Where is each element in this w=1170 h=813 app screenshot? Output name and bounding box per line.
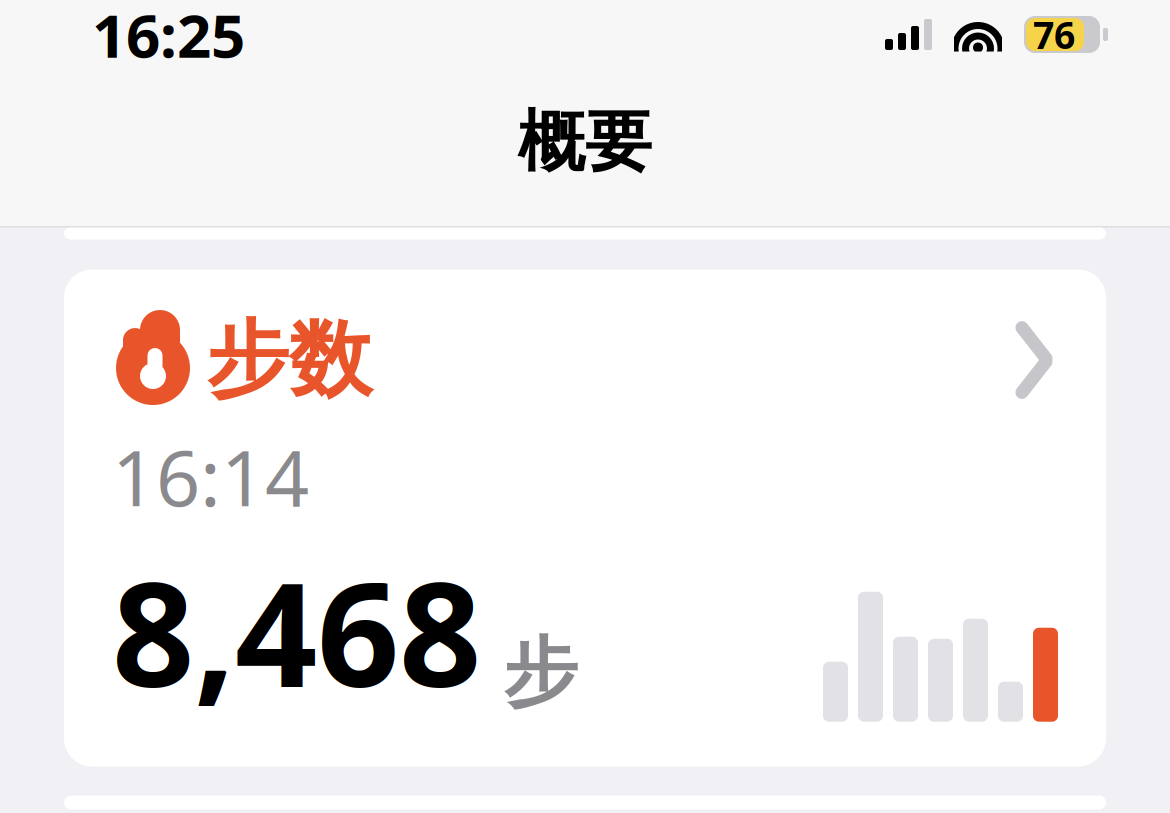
staticText: 概要 [518,101,652,183]
staticText: 76 [1033,10,1075,59]
button[interactable]: 步数 [0,269,1170,766]
staticText: 步数 [206,309,372,411]
staticText: 16:25 [92,0,245,74]
staticText: 8,468 [112,535,481,727]
staticText: 16:14 [112,425,309,527]
staticText: 步 [503,627,578,719]
